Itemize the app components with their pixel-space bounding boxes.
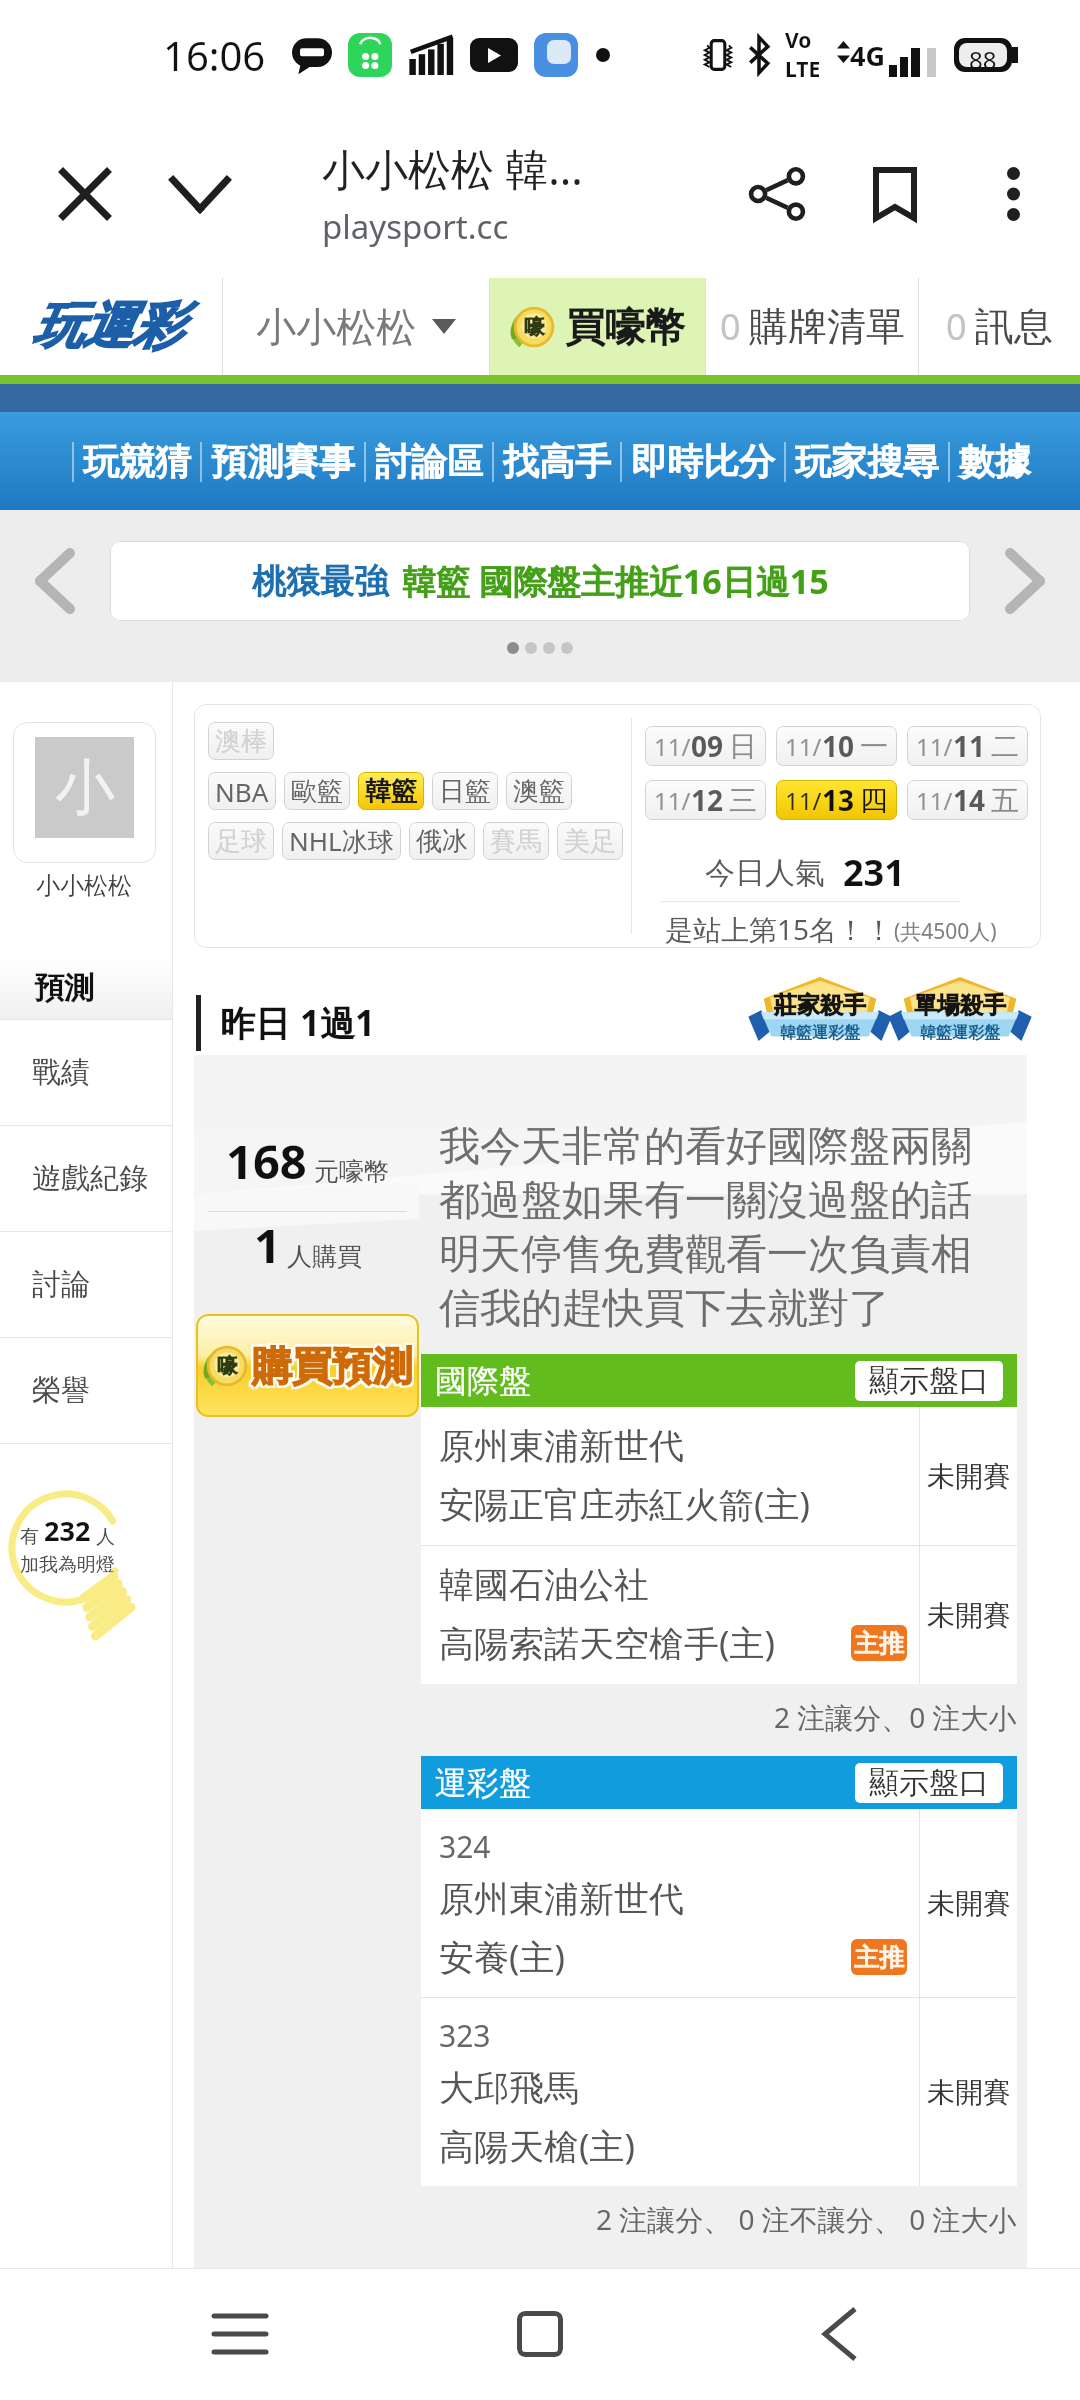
button[interactable]: 數據 — [950, 439, 1040, 484]
button[interactable]: 11/ — [907, 726, 1028, 766]
button[interactable]: 俄冰 — [409, 822, 475, 860]
staticText: 玩家搜尋 — [795, 439, 939, 484]
staticText: 即時比分 — [631, 439, 775, 484]
staticText: 預測賽事 — [211, 439, 355, 484]
button[interactable]: Collapse — [140, 129, 260, 259]
staticText: 二 — [991, 729, 1019, 764]
staticText: 1過1 — [300, 999, 376, 1047]
staticText: 購買預測 — [252, 1343, 412, 1393]
button[interactable]: NHL冰球 — [282, 822, 401, 860]
staticText: 莊家殺手 — [774, 991, 866, 1020]
staticText: 國際盤 — [435, 1361, 531, 1401]
staticText: 購買預測 — [250, 1341, 410, 1391]
staticText: 玩運彩 — [29, 298, 179, 361]
staticText: 232 — [44, 1512, 91, 1549]
button[interactable]: 戰績 — [0, 1020, 172, 1125]
staticText: 韓籃運彩盤 — [920, 1023, 1000, 1041]
staticText: 韓籃 國際盤主推近16日過15 — [402, 558, 829, 604]
button[interactable]: 玩家搜尋 — [786, 439, 948, 484]
button[interactable]: 嚎 — [196, 1314, 419, 1417]
staticText: 玩運彩 — [35, 298, 185, 361]
button[interactable]: 11/ — [776, 726, 897, 766]
staticText: 昨日 — [220, 999, 300, 1047]
staticText: 找高手 — [503, 439, 611, 484]
button[interactable]: 11/ — [645, 780, 766, 820]
button[interactable]: Close — [30, 129, 140, 259]
button[interactable]: 玩競猜 — [74, 439, 200, 484]
button[interactable]: 11/ — [776, 780, 897, 820]
button[interactable]: 小小松松 — [223, 278, 489, 375]
staticText: 顯示盤口 — [869, 1362, 989, 1400]
staticText: 未開賽 — [927, 1598, 1011, 1633]
staticText: 未開賽 — [927, 1886, 1011, 1921]
button[interactable]: Next banner — [970, 540, 1080, 622]
staticText: 大邱飛馬 — [439, 2066, 579, 2110]
button[interactable]: 討論區 — [366, 439, 492, 484]
button[interactable]: 榮譽 — [0, 1338, 172, 1443]
button[interactable]: 足球 — [208, 822, 274, 860]
button[interactable]: 0 — [706, 278, 918, 375]
button[interactable]: 11/ — [645, 726, 766, 766]
staticText: 168 — [226, 1129, 307, 1193]
staticText: 主推 — [854, 1628, 904, 1659]
button[interactable]: 預測賽事 — [202, 439, 364, 484]
staticText: 88 — [969, 43, 997, 67]
button[interactable]: 桃猿最強 — [110, 541, 970, 621]
button[interactable]: 澳棒 — [208, 722, 274, 760]
staticText: 玩競猜 — [83, 439, 191, 484]
button[interactable]: 賽馬 — [483, 822, 549, 860]
staticText: 0 — [720, 302, 741, 351]
staticText: 0 — [946, 302, 967, 351]
staticText: (共4500人) — [894, 917, 997, 946]
staticText: 11/ — [785, 730, 822, 763]
button[interactable]: 歐籃 — [284, 772, 350, 810]
button[interactable]: More options — [954, 129, 1072, 259]
button[interactable]: 找高手 — [494, 439, 620, 484]
staticText: 玩運彩 — [29, 292, 179, 355]
staticText: 一 — [860, 729, 888, 764]
staticText: 韓籃運彩盤 — [780, 1023, 860, 1041]
button[interactable]: Previous banner — [0, 540, 110, 622]
button[interactable]: NBA — [208, 772, 276, 810]
staticText: 遊戲紀錄 — [32, 1160, 148, 1197]
staticText: 11/ — [916, 730, 953, 763]
staticText: 小小松松 — [256, 302, 416, 352]
staticText: 單場殺手 — [914, 991, 1006, 1020]
staticText: 元嚎幣 — [314, 1156, 389, 1187]
button[interactable]: Home — [480, 2274, 600, 2394]
button[interactable]: Recents — [180, 2274, 300, 2394]
staticText: 10 — [822, 727, 855, 765]
staticText: 人購買 — [287, 1241, 362, 1272]
button[interactable]: Bookmark — [836, 129, 954, 259]
staticText: 歐籃 — [291, 775, 343, 808]
button[interactable]: 11/ — [907, 780, 1028, 820]
staticText: 4G — [850, 37, 885, 74]
staticText: 231 — [843, 848, 905, 897]
staticText: playsport.cc — [322, 204, 509, 249]
staticText: 12 — [691, 781, 724, 819]
button[interactable]: Back — [780, 2274, 900, 2394]
staticText: 玩運彩 — [35, 295, 185, 358]
button[interactable]: 顯示盤口 — [855, 1361, 1003, 1401]
button[interactable]: 顯示盤口 — [855, 1763, 1003, 1803]
staticText: 是站上第15名！！ — [665, 910, 894, 948]
button[interactable]: 0 — [919, 278, 1080, 375]
button[interactable]: 遊戲紀錄 — [0, 1126, 172, 1231]
staticText: 小 — [55, 750, 115, 826]
button[interactable]: 嚎 — [490, 278, 705, 375]
button[interactable]: 日籃 — [432, 772, 498, 810]
staticText: 高陽索諾天空槍手(主) — [439, 1619, 776, 1667]
button[interactable]: 韓籃 — [358, 772, 424, 810]
button[interactable]: 美足 — [557, 822, 623, 860]
button[interactable]: 討論 — [0, 1232, 172, 1337]
button[interactable]: 澳籃 — [506, 772, 572, 810]
button[interactable]: 即時比分 — [622, 439, 784, 484]
staticText: 人 — [91, 1523, 115, 1549]
staticText: 原州東浦新世代 — [439, 1424, 684, 1468]
button[interactable]: 玩運彩 — [0, 278, 222, 375]
staticText: NBA — [215, 774, 269, 809]
staticText: 日籃 — [439, 775, 491, 808]
staticText: 韓籃 — [365, 775, 417, 808]
button[interactable]: Share — [718, 129, 836, 259]
staticText: 韓國石油公社 — [439, 1563, 649, 1607]
